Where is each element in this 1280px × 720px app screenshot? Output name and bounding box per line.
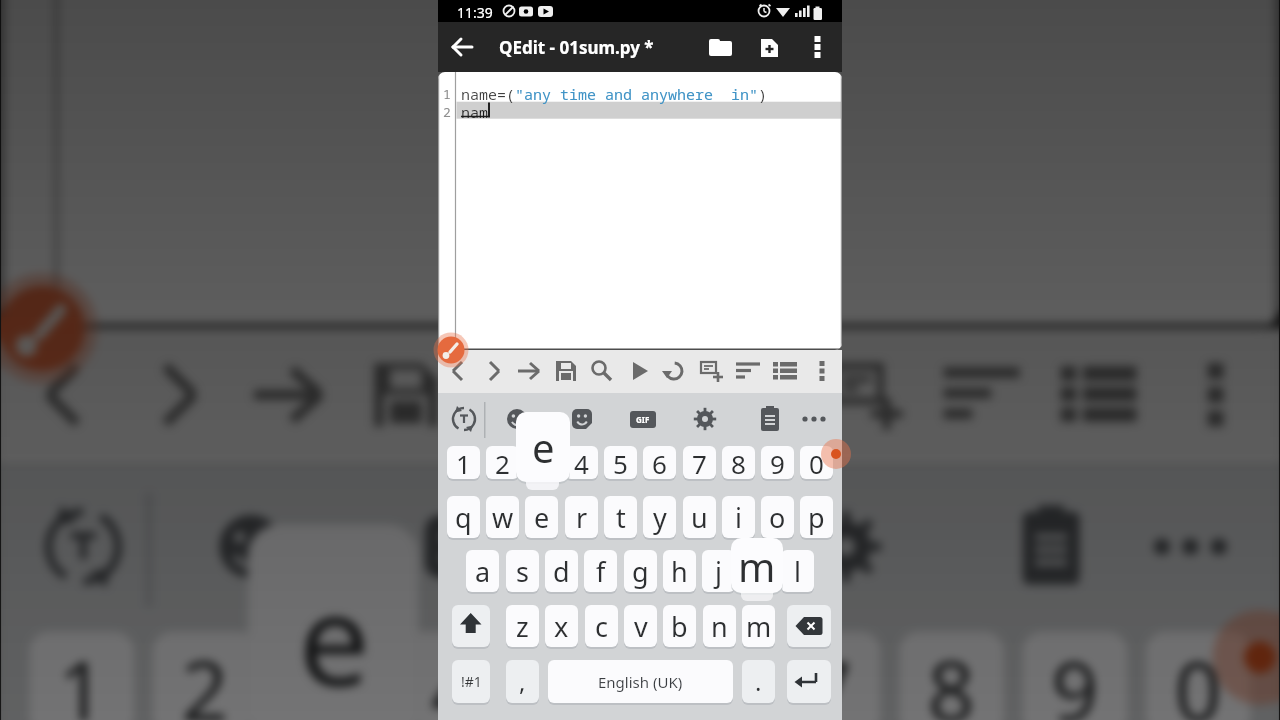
button[interactable]: [806, 355, 838, 387]
button[interactable]: [659, 355, 691, 387]
button[interactable]: z: [506, 605, 539, 647]
button[interactable]: w: [486, 496, 519, 538]
button[interactable]: [704, 31, 736, 63]
button[interactable]: [442, 355, 474, 387]
button[interactable]: [478, 355, 510, 387]
button[interactable]: [586, 355, 618, 387]
staticText: d: [553, 553, 570, 590]
button[interactable]: [406, 496, 507, 597]
button[interactable]: 5: [526, 632, 630, 720]
button[interactable]: [550, 355, 582, 387]
button[interactable]: [1165, 344, 1266, 445]
button[interactable]: 5: [604, 446, 637, 479]
button[interactable]: 4: [403, 632, 507, 720]
button[interactable]: g: [624, 550, 657, 592]
button[interactable]: ,: [506, 660, 539, 703]
button[interactable]: [1001, 496, 1102, 597]
button[interactable]: 0: [800, 446, 833, 479]
button[interactable]: 6: [649, 632, 754, 720]
button[interactable]: u: [683, 496, 716, 538]
staticText: 0: [1174, 632, 1222, 720]
button[interactable]: v: [624, 605, 657, 647]
button[interactable]: x: [545, 605, 578, 647]
button[interactable]: GIF: [608, 521, 691, 575]
button[interactable]: a: [466, 550, 499, 592]
button[interactable]: 3: [525, 446, 558, 479]
button[interactable]: [513, 355, 545, 387]
button[interactable]: e: [525, 496, 558, 538]
button[interactable]: [14, 344, 115, 445]
staticText: k: [750, 553, 765, 590]
button[interactable]: [787, 660, 831, 703]
button[interactable]: o: [761, 496, 794, 538]
button[interactable]: [795, 496, 896, 597]
button[interactable]: [696, 355, 728, 387]
button[interactable]: r: [565, 496, 598, 538]
button[interactable]: 2: [486, 446, 519, 479]
button[interactable]: k: [741, 550, 774, 592]
button[interactable]: [732, 355, 764, 387]
button[interactable]: [623, 355, 655, 387]
button[interactable]: [769, 355, 801, 387]
button[interactable]: !#1: [452, 660, 490, 703]
button[interactable]: [448, 403, 480, 435]
button[interactable]: 3: [276, 632, 381, 720]
button[interactable]: [128, 344, 229, 445]
button[interactable]: n: [703, 605, 736, 647]
button[interactable]: [566, 403, 598, 435]
staticText: QEdit - 01sum.py *: [499, 36, 654, 59]
button[interactable]: j: [702, 550, 735, 592]
button[interactable]: m: [742, 605, 775, 647]
button[interactable]: [33, 496, 134, 597]
button[interactable]: English (UK): [548, 660, 733, 703]
button[interactable]: b: [663, 605, 696, 647]
button[interactable]: [931, 344, 1032, 445]
button[interactable]: 6: [643, 446, 676, 479]
button[interactable]: [200, 496, 301, 597]
button[interactable]: GIF: [630, 411, 656, 428]
staticText: English (UK): [598, 672, 683, 692]
button[interactable]: [689, 403, 721, 435]
button[interactable]: 9: [761, 446, 794, 479]
button[interactable]: [808, 30, 828, 64]
button[interactable]: y: [643, 496, 676, 538]
button[interactable]: [798, 403, 830, 435]
button[interactable]: 0: [1146, 632, 1250, 720]
button[interactable]: 1: [447, 446, 480, 479]
button[interactable]: d: [545, 550, 578, 592]
button[interactable]: 8: [722, 446, 755, 479]
button[interactable]: c: [585, 605, 618, 647]
button[interactable]: h: [663, 550, 696, 592]
button[interactable]: [753, 31, 785, 63]
button[interactable]: 8: [899, 632, 1004, 720]
button[interactable]: [754, 403, 786, 435]
button[interactable]: f: [584, 550, 617, 592]
button[interactable]: [817, 344, 918, 445]
button[interactable]: [1048, 344, 1149, 445]
button[interactable]: [452, 605, 490, 647]
button[interactable]: l: [781, 550, 814, 592]
button[interactable]: q: [447, 496, 480, 538]
button[interactable]: i: [722, 496, 755, 538]
button[interactable]: [586, 344, 687, 445]
button[interactable]: [787, 605, 831, 647]
button[interactable]: [238, 344, 339, 445]
staticText: v: [634, 608, 648, 645]
button[interactable]: 7: [776, 632, 880, 720]
button[interactable]: 7: [683, 446, 716, 479]
button[interactable]: [446, 31, 478, 63]
button[interactable]: 1: [29, 632, 134, 720]
button[interactable]: [469, 344, 570, 445]
button[interactable]: [501, 403, 533, 435]
button[interactable]: 4: [565, 446, 598, 479]
staticText: 2: [495, 446, 510, 479]
button[interactable]: [1140, 496, 1241, 597]
button[interactable]: s: [506, 550, 539, 592]
button[interactable]: [700, 344, 801, 445]
button[interactable]: [355, 344, 456, 445]
button[interactable]: p: [800, 496, 833, 538]
button[interactable]: 9: [1023, 632, 1127, 720]
button[interactable]: .: [742, 660, 775, 703]
button[interactable]: t: [604, 496, 637, 538]
button[interactable]: 2: [153, 632, 257, 720]
